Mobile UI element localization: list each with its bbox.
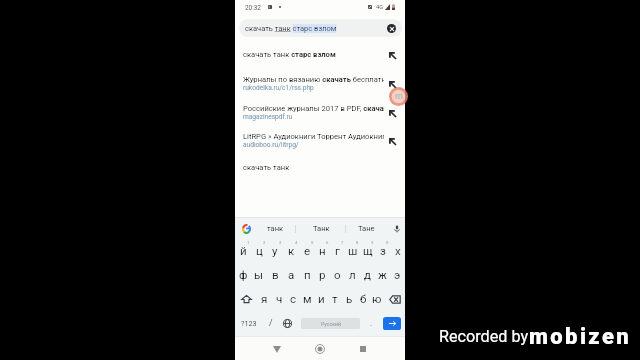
button[interactable]: т xyxy=(328,287,342,311)
staticText: Русский xyxy=(321,321,341,327)
button[interactable]: Voice input xyxy=(389,218,405,239)
button[interactable]: Clear query xyxy=(387,24,396,33)
staticText: m xyxy=(395,91,403,102)
button[interactable]: р xyxy=(315,263,330,287)
button[interactable]: Use this suggestion xyxy=(391,40,405,69)
button[interactable]: Backspace xyxy=(384,287,405,311)
button[interactable]: у xyxy=(267,239,283,263)
button[interactable]: э xyxy=(390,263,405,287)
staticText: Recorded by xyxy=(439,327,529,346)
button[interactable]: х xyxy=(390,239,405,263)
staticText: 5 xyxy=(311,240,314,245)
button[interactable]: п xyxy=(299,263,315,287)
button[interactable]: ж xyxy=(375,263,390,287)
button[interactable]: Search xyxy=(383,317,401,330)
button[interactable]: ш xyxy=(345,239,360,263)
staticText: ?123 xyxy=(241,319,257,327)
button[interactable]: Mobizen recorder xyxy=(389,87,408,106)
button[interactable]: в xyxy=(267,263,283,287)
button[interactable]: н xyxy=(315,239,330,263)
staticText: 2 xyxy=(263,240,266,245)
button[interactable]: скачать танк старс взлом xyxy=(239,19,402,37)
button[interactable]: ц xyxy=(251,239,267,263)
button[interactable]: Change keyboard language xyxy=(278,311,297,335)
button[interactable]: Use this suggestion xyxy=(391,98,405,127)
staticText: я xyxy=(261,292,268,306)
button[interactable]: о xyxy=(330,263,345,287)
button[interactable]: а xyxy=(283,263,299,287)
button[interactable]: м xyxy=(300,287,314,311)
staticText: 20:32 xyxy=(245,4,261,12)
staticText: в xyxy=(272,268,279,282)
staticText: ю xyxy=(372,292,382,306)
staticText: 8 xyxy=(356,240,359,245)
button[interactable]: ф xyxy=(235,263,251,287)
button[interactable]: . xyxy=(364,311,379,335)
button[interactable]: Home xyxy=(309,338,331,360)
staticText: LitRPG » Аудиокниги Торрент Аудиокниги xyxy=(243,132,384,141)
button[interactable]: скачать танк старс взлом xyxy=(235,40,405,69)
button[interactable]: Тане xyxy=(355,218,377,239)
button[interactable]: б xyxy=(356,287,370,311)
button[interactable]: Журналы по вязанию скачать бесплатно xyxy=(235,69,405,98)
button[interactable]: з xyxy=(375,239,390,263)
staticText: . xyxy=(370,318,373,328)
staticText: 6 xyxy=(326,240,329,245)
button[interactable]: / xyxy=(263,311,278,335)
button[interactable]: Use this suggestion xyxy=(391,69,405,98)
staticText: / xyxy=(269,318,273,328)
button[interactable]: танк xyxy=(264,218,286,239)
button[interactable]: Shift xyxy=(235,287,257,311)
button[interactable]: ?123 xyxy=(235,311,263,335)
staticText: Российские журналы 2017 в PDF, скачать xyxy=(243,104,384,113)
button[interactable]: ы xyxy=(251,263,267,287)
button[interactable]: д xyxy=(360,263,375,287)
staticText: 4 xyxy=(295,240,298,245)
button[interactable]: Русский xyxy=(301,318,360,329)
button[interactable]: е xyxy=(299,239,315,263)
button[interactable]: LitRPG » Аудиокниги Торрент Аудиокниги xyxy=(235,126,405,155)
staticText: Тане xyxy=(358,224,375,233)
button[interactable]: Танк xyxy=(310,218,332,239)
button[interactable]: Российские журналы 2017 в PDF, скачать xyxy=(235,98,405,127)
staticText: с xyxy=(290,292,297,306)
button[interactable]: щ xyxy=(360,239,375,263)
button[interactable]: ч xyxy=(272,287,286,311)
staticText: ш xyxy=(348,244,358,258)
button[interactable]: скачать танк xyxy=(235,154,405,181)
staticText: ж xyxy=(378,268,387,282)
staticText: н xyxy=(319,244,326,258)
staticText: Танк xyxy=(313,224,330,233)
staticText: м xyxy=(303,292,312,306)
button[interactable]: Use this suggestion xyxy=(391,126,405,155)
button[interactable]: л xyxy=(345,263,360,287)
staticText: ь xyxy=(346,292,353,306)
staticText: к xyxy=(288,244,295,258)
staticText: э xyxy=(394,268,401,282)
staticText: скачать танк старс взлом xyxy=(243,50,384,59)
button[interactable]: ь xyxy=(342,287,356,311)
button[interactable]: й xyxy=(235,239,251,263)
button[interactable]: Recent apps xyxy=(352,338,374,360)
button[interactable]: ю xyxy=(370,287,384,311)
staticText: у xyxy=(272,244,278,258)
staticText: о xyxy=(334,268,341,282)
staticText: щ xyxy=(363,244,373,258)
staticText: а xyxy=(288,268,295,282)
staticText: audioboo.ru/litrpg/ xyxy=(243,141,299,149)
staticText: р xyxy=(319,268,326,282)
button[interactable]: Back xyxy=(266,338,288,360)
staticText: ы xyxy=(254,268,264,282)
button[interactable]: к xyxy=(283,239,299,263)
staticText: 0 xyxy=(386,240,389,245)
staticText: з xyxy=(380,244,386,258)
button[interactable]: и xyxy=(314,287,328,311)
staticText: Журналы по вязанию скачать бесплатно xyxy=(243,75,384,84)
staticText: 7 xyxy=(341,240,344,245)
button[interactable]: с xyxy=(286,287,300,311)
staticText: mobizen xyxy=(529,324,632,350)
button[interactable]: г xyxy=(330,239,345,263)
button[interactable]: Google xyxy=(242,224,252,234)
staticText: г xyxy=(335,244,340,258)
button[interactable]: я xyxy=(257,287,272,311)
